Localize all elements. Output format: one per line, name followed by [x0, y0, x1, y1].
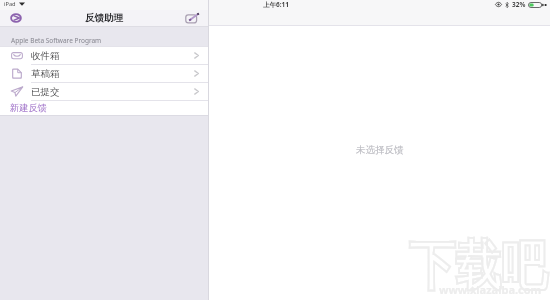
button[interactable]: 已提交	[0, 83, 208, 100]
staticText: 反馈助理	[85, 12, 123, 24]
staticText: www.xiazaiba.com	[439, 282, 542, 297]
button[interactable]: 草稿箱	[0, 65, 208, 82]
staticText: Apple Beta Software Program	[11, 36, 102, 45]
staticText: 下载吧	[409, 233, 547, 300]
button[interactable]: New Feedback	[184, 10, 201, 26]
staticText: iPad	[4, 0, 16, 8]
button[interactable]: 新建反馈	[0, 101, 208, 115]
staticText: 收件箱	[31, 50, 60, 62]
staticText: 新建反馈	[10, 102, 47, 114]
button[interactable]: Account	[7, 10, 24, 26]
button[interactable]: 收件箱	[0, 47, 208, 64]
staticText: 未选择反馈	[356, 144, 404, 156]
staticText: 上午6:11	[263, 0, 289, 9]
staticText: 32%	[512, 0, 526, 9]
staticText: 已提交	[31, 86, 60, 98]
staticText: 草稿箱	[31, 68, 60, 80]
